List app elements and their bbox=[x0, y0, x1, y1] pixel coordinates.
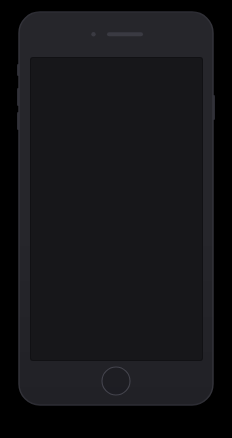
button[interactable]: Phone device illustration bbox=[0, 0, 232, 438]
